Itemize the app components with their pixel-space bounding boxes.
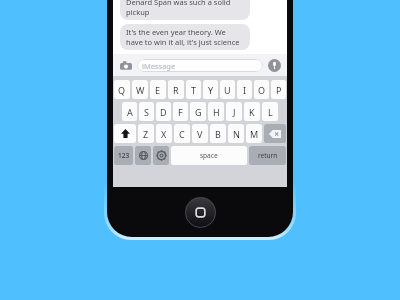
staticText: U: [224, 84, 231, 96]
button[interactable]: Keyboard settings: [153, 146, 169, 165]
button[interactable]: W: [132, 80, 148, 99]
staticText: Z: [143, 128, 149, 140]
staticText: N: [233, 128, 240, 140]
staticText: M: [250, 128, 259, 140]
staticText: Denard Span was such a solid pickup: [126, 0, 244, 17]
button[interactable]: return: [249, 146, 286, 165]
staticText: L: [268, 106, 273, 118]
button[interactable]: A: [122, 102, 137, 121]
staticText: R: [173, 84, 179, 96]
button[interactable]: Camera: [118, 58, 133, 73]
button[interactable]: space: [171, 146, 247, 165]
button[interactable]: S: [139, 102, 154, 121]
staticText: Q: [118, 84, 126, 96]
staticText: I: [243, 84, 247, 96]
button[interactable]: N: [228, 124, 244, 143]
staticText: space: [200, 151, 218, 160]
staticText: iMessage: [142, 61, 176, 71]
staticText: It's the even year theory. We have to wi…: [126, 27, 244, 47]
button[interactable]: Z: [138, 124, 154, 143]
button[interactable]: Numbers: [114, 146, 133, 165]
staticText: B: [215, 128, 221, 140]
button[interactable]: Record audio: [267, 58, 282, 73]
button[interactable]: Denard Span was such a solid pickup: [120, 0, 250, 20]
button[interactable]: It's the even year theory. We have to wi…: [120, 24, 250, 50]
button[interactable]: T: [186, 80, 201, 99]
staticText: A: [127, 106, 133, 118]
button[interactable]: I: [237, 80, 252, 99]
button[interactable]: M: [246, 124, 262, 143]
staticText: return: [258, 151, 278, 160]
button[interactable]: K: [244, 102, 260, 121]
staticText: 123: [118, 151, 130, 160]
staticText: F: [178, 106, 183, 118]
button[interactable]: G: [190, 102, 206, 121]
button[interactable]: J: [226, 102, 242, 121]
button[interactable]: F: [173, 102, 188, 121]
button[interactable]: Home: [185, 197, 216, 228]
button[interactable]: Emoji: [135, 146, 151, 165]
staticText: W: [136, 84, 145, 96]
button[interactable]: V: [192, 124, 208, 143]
button[interactable]: Backspace: [264, 124, 286, 143]
button[interactable]: O: [254, 80, 269, 99]
button[interactable]: R: [168, 80, 184, 99]
button[interactable]: Shift: [114, 124, 136, 143]
staticText: D: [160, 106, 167, 118]
button[interactable]: Y: [203, 80, 218, 99]
staticText: G: [195, 106, 202, 118]
staticText: V: [197, 128, 203, 140]
button[interactable]: P: [271, 80, 286, 99]
button[interactable]: H: [208, 102, 224, 121]
button[interactable]: Q: [114, 80, 130, 99]
button[interactable]: U: [220, 80, 235, 99]
staticText: O: [258, 84, 266, 96]
staticText: T: [191, 84, 197, 96]
button[interactable]: B: [210, 124, 226, 143]
staticText: H: [213, 106, 220, 118]
button[interactable]: L: [262, 102, 278, 121]
button[interactable]: D: [156, 102, 171, 121]
staticText: K: [249, 106, 255, 118]
button[interactable]: iMessage: [137, 59, 263, 72]
staticText: Y: [208, 84, 214, 96]
staticText: E: [155, 84, 161, 96]
button[interactable]: E: [150, 80, 166, 99]
button[interactable]: C: [174, 124, 190, 143]
staticText: P: [276, 84, 282, 96]
staticText: S: [144, 106, 149, 118]
button[interactable]: X: [156, 124, 172, 143]
staticText: J: [233, 106, 236, 118]
staticText: X: [161, 128, 167, 140]
staticText: C: [179, 128, 185, 140]
